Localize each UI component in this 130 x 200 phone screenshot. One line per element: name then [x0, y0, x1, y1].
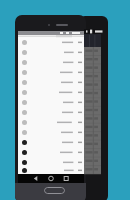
button[interactable]: [18, 127, 84, 137]
button[interactable]: [18, 117, 84, 127]
button[interactable]: [18, 57, 84, 67]
button[interactable]: [18, 97, 84, 107]
button[interactable]: App bar: [18, 35, 84, 37]
button[interactable]: [18, 157, 84, 167]
button[interactable]: [18, 167, 84, 174]
button[interactable]: [18, 137, 84, 147]
button[interactable]: Second phone screen: [84, 29, 101, 174]
button[interactable]: [18, 67, 84, 77]
button[interactable]: [18, 77, 84, 87]
button[interactable]: Status bar: [18, 31, 84, 35]
button[interactable]: [18, 47, 84, 57]
button[interactable]: [18, 147, 84, 157]
button[interactable]: [18, 107, 84, 117]
button[interactable]: [18, 87, 84, 97]
button[interactable]: Home: [44, 187, 65, 194]
button[interactable]: [18, 37, 84, 47]
